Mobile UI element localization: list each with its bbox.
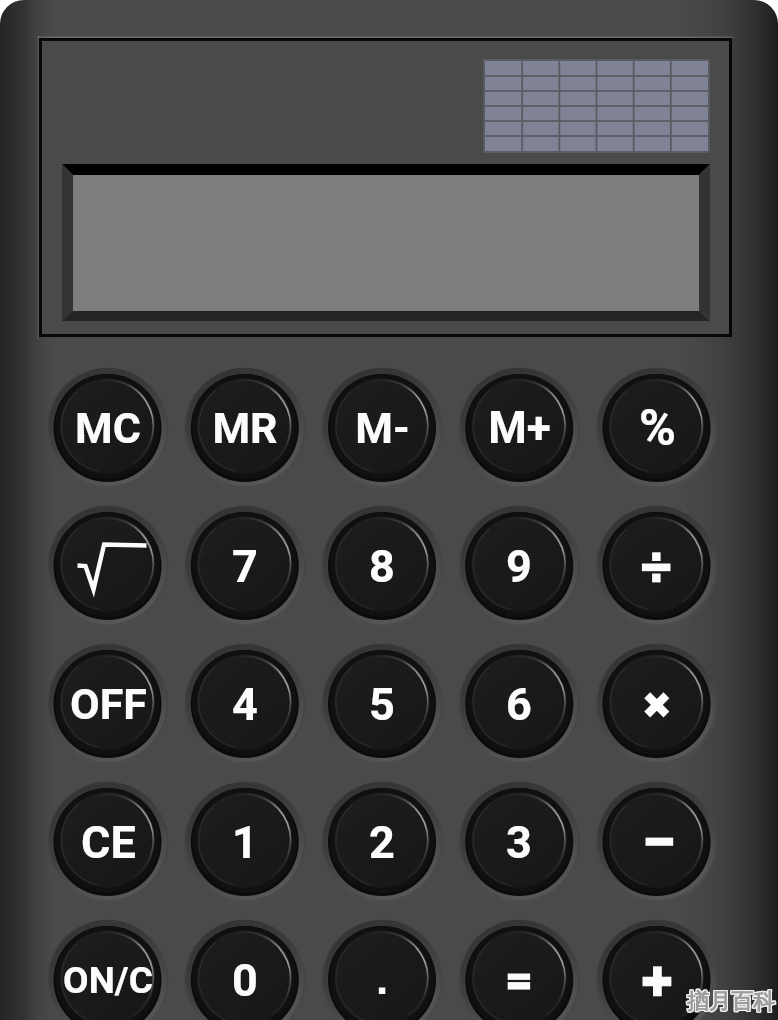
staticText: 2 bbox=[369, 816, 395, 869]
button[interactable]: MR bbox=[191, 374, 298, 481]
staticText: MR bbox=[212, 403, 278, 453]
button[interactable]: % bbox=[603, 374, 710, 481]
button[interactable]: 7 bbox=[191, 512, 298, 619]
staticText: MC bbox=[75, 403, 141, 453]
button[interactable]: MC bbox=[54, 374, 161, 481]
staticText: ON/C bbox=[63, 959, 153, 1002]
staticText: 揂月百科 bbox=[687, 988, 775, 1016]
staticText: 1 bbox=[232, 816, 258, 869]
button[interactable]: 0 bbox=[191, 926, 298, 1020]
button[interactable]: 4 bbox=[191, 650, 298, 757]
button[interactable]: Square root bbox=[54, 512, 161, 619]
button[interactable]: Plus bbox=[603, 926, 710, 1020]
button[interactable]: Decimal point bbox=[329, 926, 436, 1020]
staticText: 揂月百科 bbox=[687, 987, 775, 1015]
button[interactable]: M+ bbox=[466, 374, 573, 481]
button[interactable]: 8 bbox=[329, 512, 436, 619]
staticText: 揂月百科 bbox=[688, 989, 776, 1017]
staticText: 7 bbox=[232, 540, 258, 593]
staticText: 揂月百科 bbox=[686, 987, 774, 1015]
staticText: 揂月百科 bbox=[688, 988, 776, 1016]
button[interactable]: OFF bbox=[54, 650, 161, 757]
staticText: 8 bbox=[369, 540, 395, 593]
button[interactable]: CE bbox=[54, 788, 161, 895]
staticText: 0 bbox=[232, 954, 258, 1007]
staticText: CE bbox=[81, 816, 136, 869]
staticText: 4 bbox=[232, 678, 258, 731]
button[interactable]: 2 bbox=[329, 788, 436, 895]
button[interactable]: 9 bbox=[466, 512, 573, 619]
button[interactable]: 1 bbox=[191, 788, 298, 895]
button[interactable]: Equals bbox=[466, 926, 573, 1020]
staticText: 揂月百科 bbox=[688, 987, 776, 1015]
button[interactable]: Minus bbox=[603, 788, 710, 895]
button[interactable]: ON/C bbox=[54, 926, 161, 1020]
staticText: 9 bbox=[506, 540, 532, 593]
button[interactable]: M- bbox=[329, 374, 436, 481]
button[interactable]: 5 bbox=[329, 650, 436, 757]
staticText: 5 bbox=[369, 678, 395, 731]
button[interactable]: Divide bbox=[603, 512, 710, 619]
staticText: M- bbox=[355, 403, 410, 453]
staticText: 揂月百科 bbox=[687, 989, 775, 1017]
staticText: 揂月百科 bbox=[686, 989, 774, 1017]
staticText: 3 bbox=[506, 816, 532, 869]
staticText: M+ bbox=[488, 402, 551, 454]
staticText: 6 bbox=[506, 678, 532, 731]
button[interactable]: Multiply bbox=[603, 650, 710, 757]
staticText: OFF bbox=[70, 679, 147, 729]
button[interactable]: 3 bbox=[466, 788, 573, 895]
staticText: 揂月百科 bbox=[686, 988, 774, 1016]
staticText: % bbox=[639, 399, 676, 458]
button[interactable]: 6 bbox=[466, 650, 573, 757]
